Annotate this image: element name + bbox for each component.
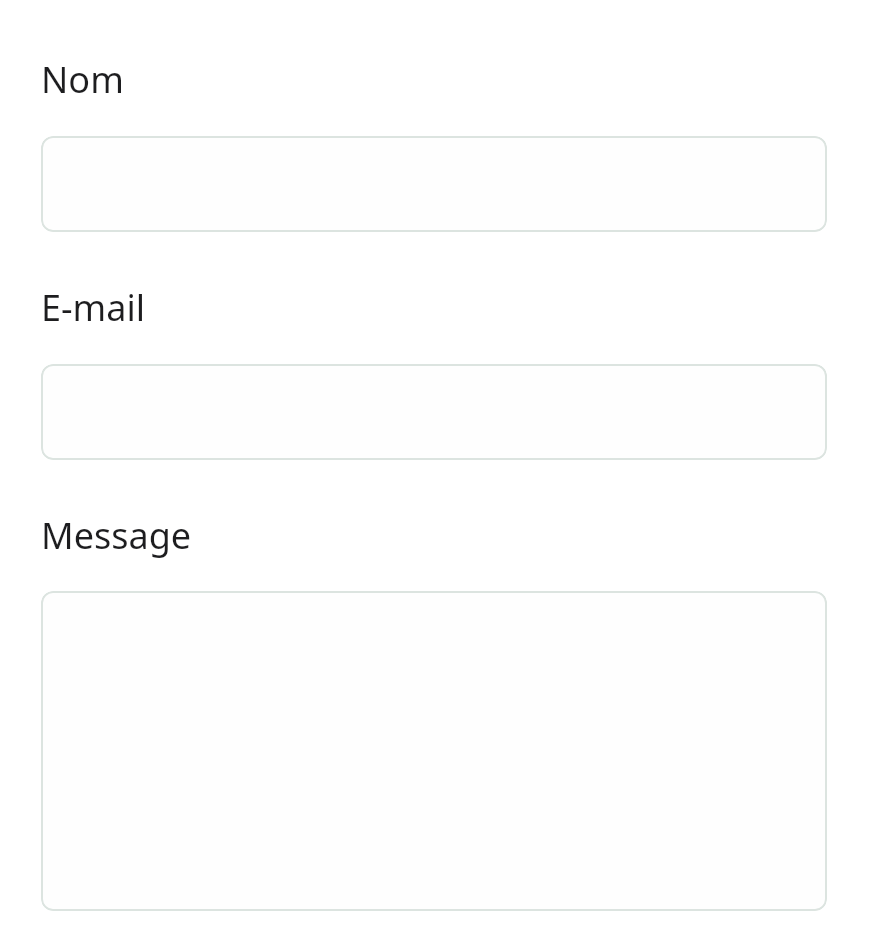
button[interactable] — [41, 591, 827, 911]
button[interactable] — [41, 364, 827, 460]
button[interactable] — [41, 136, 827, 232]
staticText: Message — [41, 511, 192, 560]
staticText: E-mail — [41, 283, 146, 332]
staticText: Nom — [41, 55, 124, 104]
